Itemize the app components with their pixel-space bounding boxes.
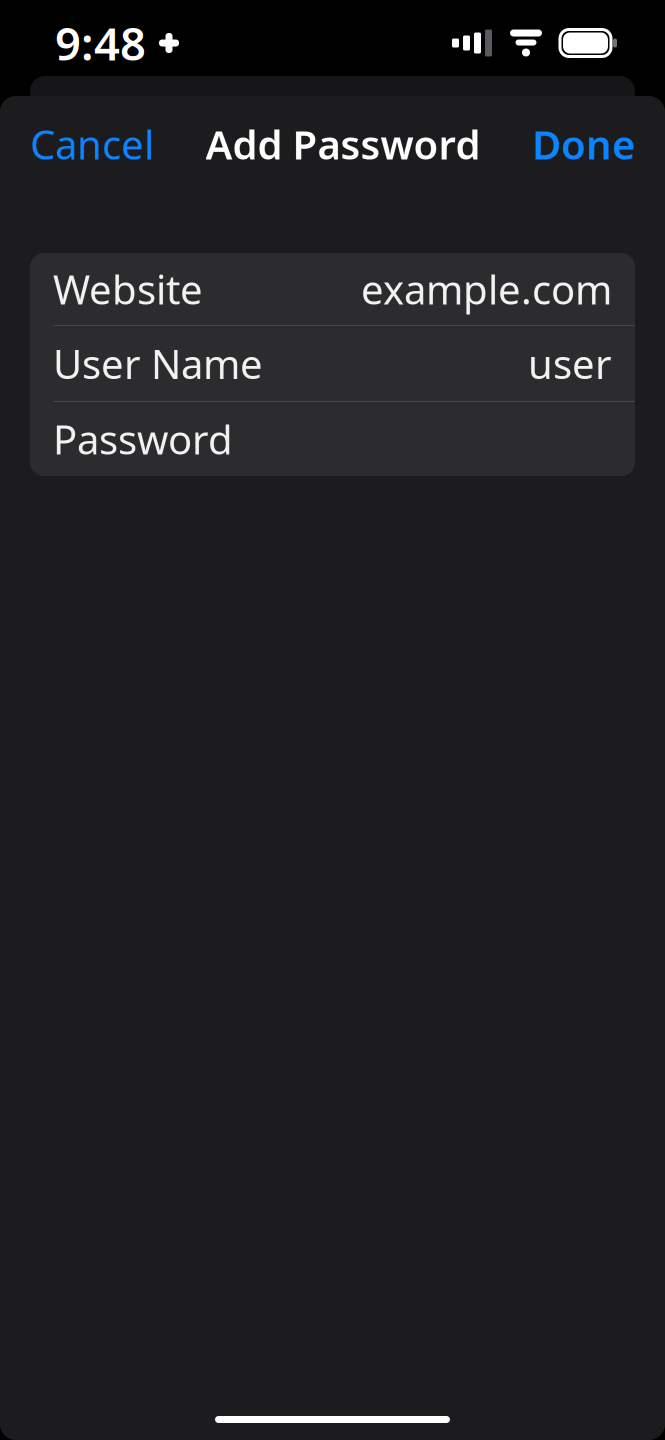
- button[interactable]: Cancel: [0, 103, 184, 184]
- staticText: Password: [53, 412, 233, 465]
- button[interactable]: User Name: [30, 326, 635, 401]
- staticText: example.com: [361, 262, 612, 315]
- staticText: user: [528, 337, 612, 390]
- staticText: 9:48: [55, 13, 146, 73]
- staticText: Website: [53, 262, 203, 315]
- staticText: Cancel: [30, 117, 154, 170]
- staticText: Add Password: [205, 117, 480, 170]
- button[interactable]: Website: [30, 253, 635, 325]
- staticText: Done: [532, 117, 635, 170]
- staticText: User Name: [53, 337, 263, 390]
- button[interactable]: Done: [502, 103, 665, 184]
- button[interactable]: Password: [30, 402, 635, 476]
